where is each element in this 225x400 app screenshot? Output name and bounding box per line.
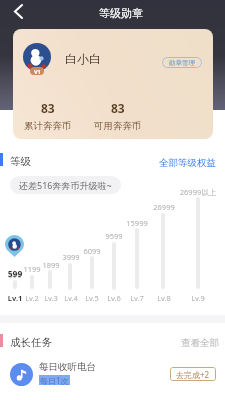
button[interactable]: Back [4,0,32,22]
staticText: 每日收听电台 [39,361,96,373]
button[interactable]: 勋章管理 [162,57,202,68]
staticText: Lv.2 [7,293,57,303]
button[interactable]: 查看全部 [181,337,219,349]
staticText: 可用奔奔币 [94,120,142,132]
staticText: 成长任务 [10,336,52,349]
staticText: Lv.8 [139,293,189,303]
staticText: 还差516奔奔币升级啦~ [19,179,112,191]
staticText: 15999 [112,218,162,228]
staticText: 1199 [7,264,57,274]
staticText: 26999以上 [173,187,223,197]
staticText: 每日1次 [40,375,69,385]
staticText: Lv.7 [112,293,162,303]
staticText: Lv.6 [89,293,139,303]
staticText: 白小白 [65,51,101,66]
staticText: 等级 [10,155,31,168]
button[interactable]: 全部等级权益 [159,157,216,169]
staticText: 查看全部 [181,337,219,349]
staticText: 599 [0,270,40,280]
staticText: 去完成+2 [176,369,210,380]
staticText: 83 [41,100,55,116]
staticText: 6099 [67,246,117,256]
staticText: 83 [111,100,125,116]
staticText: 599 [0,268,40,280]
staticText: 全部等级权益 [159,157,216,169]
staticText: 3999 [46,252,96,262]
staticText: 9599 [89,231,139,241]
staticText: Lv.5 [67,293,117,303]
staticText: 1899 [26,260,76,270]
staticText: Lv.4 [46,293,96,303]
staticText: 26999 [139,202,189,212]
staticText: Lv.3 [26,293,76,303]
staticText: V1 [34,68,41,75]
staticText: 等级勋章 [99,6,143,20]
staticText: Lv.9 [173,293,223,303]
button[interactable]: 去完成+2 [170,367,216,381]
staticText: Lv.1 [0,293,40,303]
staticText: 累计奔奔币 [24,120,72,132]
staticText: 勋章管理 [169,59,195,67]
